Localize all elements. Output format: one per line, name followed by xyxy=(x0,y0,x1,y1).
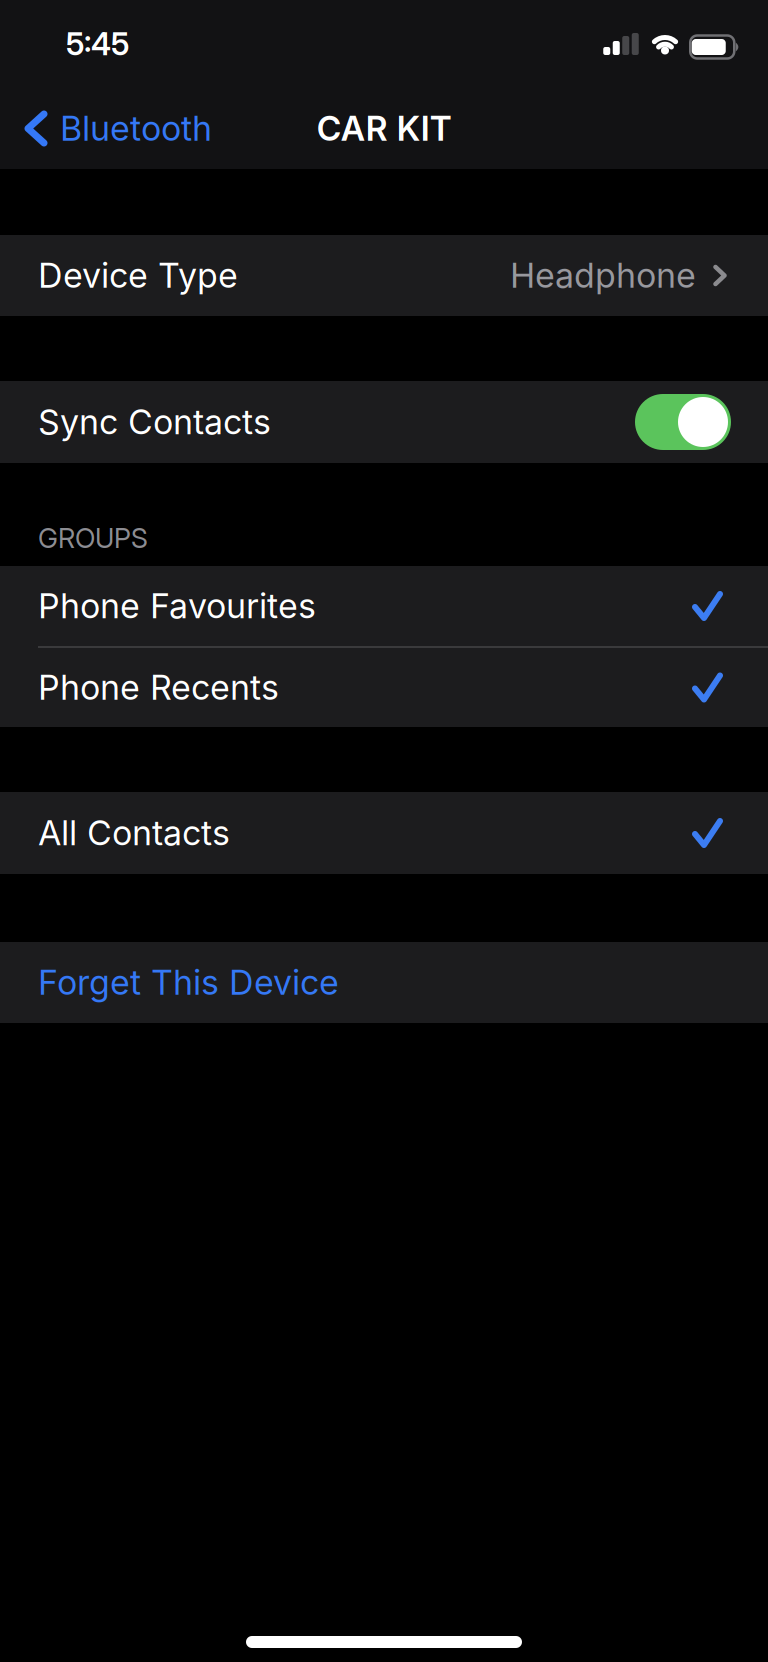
button[interactable]: Forget This Device xyxy=(0,942,768,1023)
staticText: Device Type xyxy=(38,255,238,295)
button[interactable]: Device Type xyxy=(0,235,768,316)
staticText: Headphone xyxy=(510,255,696,295)
staticText: CAR KIT xyxy=(316,108,451,148)
staticText: Bluetooth xyxy=(60,108,212,148)
staticText: Forget This Device xyxy=(38,962,339,1002)
staticText: Phone Recents xyxy=(38,667,279,707)
button[interactable]: Sync Contacts xyxy=(635,394,731,450)
button[interactable]: Phone Recents xyxy=(0,648,768,727)
button[interactable]: Phone Favourites xyxy=(0,566,768,646)
staticText: GROUPS xyxy=(38,522,148,554)
staticText: 5:45 xyxy=(66,26,129,62)
staticText: Phone Favourites xyxy=(38,586,316,626)
staticText: All Contacts xyxy=(38,813,230,853)
button[interactable]: Back xyxy=(24,108,212,148)
button[interactable]: All Contacts xyxy=(0,792,768,874)
staticText: Sync Contacts xyxy=(38,402,271,442)
